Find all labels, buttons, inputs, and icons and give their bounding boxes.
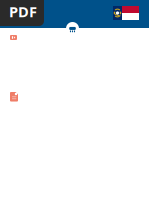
staticText: PDF bbox=[9, 2, 37, 21]
